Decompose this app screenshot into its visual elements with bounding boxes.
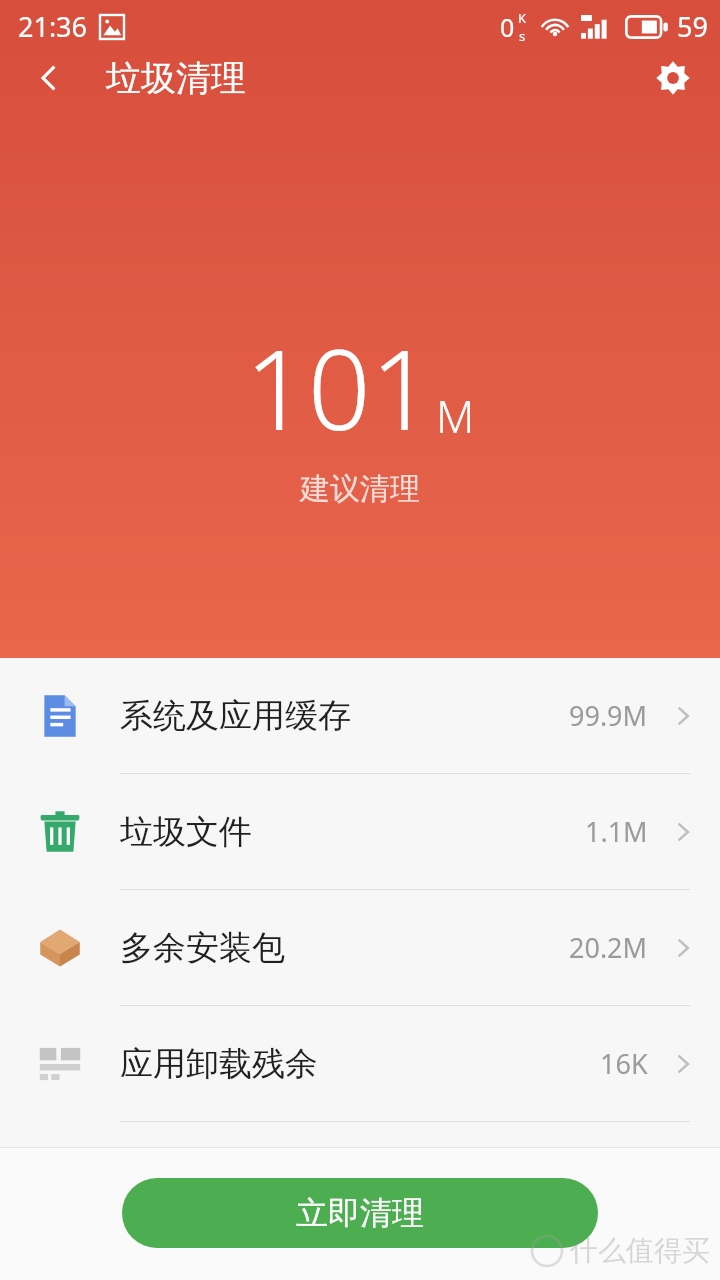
staticText: 应用卸载残余 bbox=[120, 1043, 318, 1085]
button[interactable]: 系统及应用缓存 bbox=[0, 658, 720, 773]
staticText: 101 bbox=[245, 312, 434, 462]
button[interactable]: 立即清理 bbox=[122, 1178, 598, 1248]
staticText: 垃圾清理 bbox=[106, 56, 246, 100]
staticText: 0 bbox=[500, 10, 515, 44]
staticText: M bbox=[436, 386, 475, 446]
staticText: K bbox=[518, 9, 527, 27]
button[interactable]: 应用卸载残余 bbox=[0, 1006, 720, 1121]
staticText: 立即清理 bbox=[296, 1193, 424, 1233]
staticText: s bbox=[519, 27, 526, 45]
staticText: 16K bbox=[600, 1045, 648, 1082]
staticText: 多余安装包 bbox=[120, 927, 285, 969]
staticText: 20.2M bbox=[569, 929, 648, 966]
staticText: 21:36 bbox=[18, 8, 88, 45]
staticText: 系统及应用缓存 bbox=[120, 695, 351, 737]
staticText: 建议清理 bbox=[300, 470, 420, 508]
staticText: 1.1M bbox=[585, 813, 648, 850]
staticText: 垃圾文件 bbox=[120, 811, 252, 853]
staticText: 99.9M bbox=[569, 697, 648, 734]
staticText: 什么值得买 bbox=[570, 1233, 710, 1268]
staticText: 59 bbox=[677, 8, 708, 45]
button[interactable]: Back bbox=[20, 52, 78, 104]
button[interactable]: 垃圾文件 bbox=[0, 774, 720, 889]
button[interactable]: Settings bbox=[644, 52, 702, 104]
button[interactable]: 多余安装包 bbox=[0, 890, 720, 1005]
